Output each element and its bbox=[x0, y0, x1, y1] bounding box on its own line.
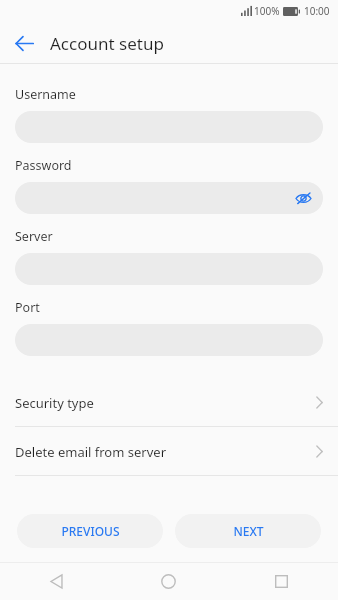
staticText: PREVIOUS bbox=[61, 523, 120, 539]
staticText: Password bbox=[15, 157, 72, 174]
staticText: 10:00 bbox=[304, 4, 330, 18]
staticText: Security type bbox=[15, 394, 94, 412]
button[interactable]: Back bbox=[0, 562, 112, 600]
button[interactable]: Recent apps bbox=[225, 562, 338, 600]
button[interactable]: Back bbox=[8, 27, 40, 59]
staticText: Account setup bbox=[50, 32, 164, 55]
button[interactable]: Home bbox=[112, 562, 225, 600]
staticText: NEXT bbox=[233, 523, 264, 539]
button[interactable]: Show password bbox=[289, 184, 317, 212]
staticText: Server bbox=[15, 228, 53, 245]
button[interactable]: Show password bbox=[15, 182, 323, 214]
staticText: Username bbox=[15, 86, 76, 103]
button[interactable]: NEXT bbox=[175, 514, 321, 548]
staticText: Delete email from server bbox=[15, 443, 166, 461]
button[interactable]: PREVIOUS bbox=[17, 514, 163, 548]
staticText: Port bbox=[15, 299, 40, 316]
button[interactable]: Delete email from server bbox=[0, 427, 338, 476]
staticText: 100% bbox=[254, 4, 280, 18]
button[interactable]: Security type bbox=[0, 378, 338, 427]
